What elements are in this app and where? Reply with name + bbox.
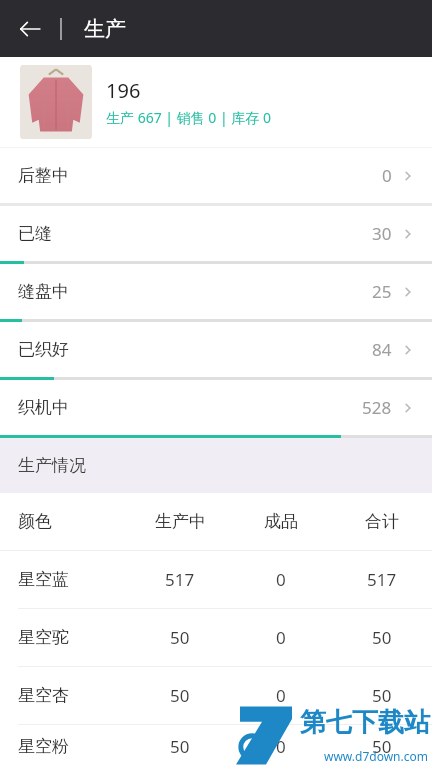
- button[interactable]: 已缝: [0, 206, 432, 261]
- staticText: 0: [276, 568, 286, 591]
- staticText: 196: [106, 77, 141, 104]
- staticText: 30: [372, 222, 392, 245]
- staticText: www.d7down.com: [324, 748, 428, 764]
- staticText: 星空杏: [18, 685, 69, 706]
- button[interactable]: Back: [10, 9, 50, 49]
- staticText: 已缝: [18, 223, 52, 244]
- staticText: 生产中: [155, 511, 206, 532]
- button[interactable]: 星空杏: [0, 667, 432, 724]
- staticText: 50: [372, 684, 392, 707]
- staticText: 0: [276, 626, 286, 649]
- staticText: 生产情况: [18, 455, 86, 476]
- staticText: 50: [170, 684, 190, 707]
- staticText: 织机中: [18, 397, 69, 418]
- staticText: 0: [276, 735, 286, 758]
- staticText: 第七下载站: [300, 706, 430, 739]
- staticText: 已织好: [18, 339, 69, 360]
- staticText: 50: [170, 735, 190, 758]
- staticText: 后整中: [18, 165, 69, 186]
- staticText: 生产: [84, 16, 126, 42]
- staticText: 星空驼: [18, 627, 69, 648]
- staticText: 517: [367, 568, 397, 591]
- staticText: 生产 667 | 销售 0 | 库存 0: [106, 108, 271, 127]
- button[interactable]: 织机中: [0, 380, 432, 435]
- staticText: 50: [372, 735, 392, 758]
- button[interactable]: 196: [0, 57, 432, 147]
- staticText: 517: [165, 568, 195, 591]
- staticText: 50: [170, 626, 190, 649]
- staticText: 星空蓝: [18, 569, 69, 590]
- button[interactable]: 后整中: [0, 148, 432, 203]
- staticText: 0: [276, 684, 286, 707]
- staticText: 84: [372, 338, 392, 361]
- button[interactable]: 已织好: [0, 322, 432, 377]
- button[interactable]: 缝盘中: [0, 264, 432, 319]
- staticText: 颜色: [18, 511, 52, 532]
- staticText: 星空粉: [18, 736, 69, 757]
- staticText: 528: [362, 396, 392, 419]
- staticText: 50: [372, 626, 392, 649]
- staticText: 缝盘中: [18, 281, 69, 302]
- staticText: 25: [372, 280, 392, 303]
- staticText: 成品: [264, 511, 298, 532]
- button[interactable]: 星空驼: [0, 609, 432, 666]
- button[interactable]: 星空粉: [0, 725, 432, 768]
- button[interactable]: 星空蓝: [0, 551, 432, 608]
- staticText: 合计: [365, 511, 399, 532]
- staticText: 0: [382, 164, 392, 187]
